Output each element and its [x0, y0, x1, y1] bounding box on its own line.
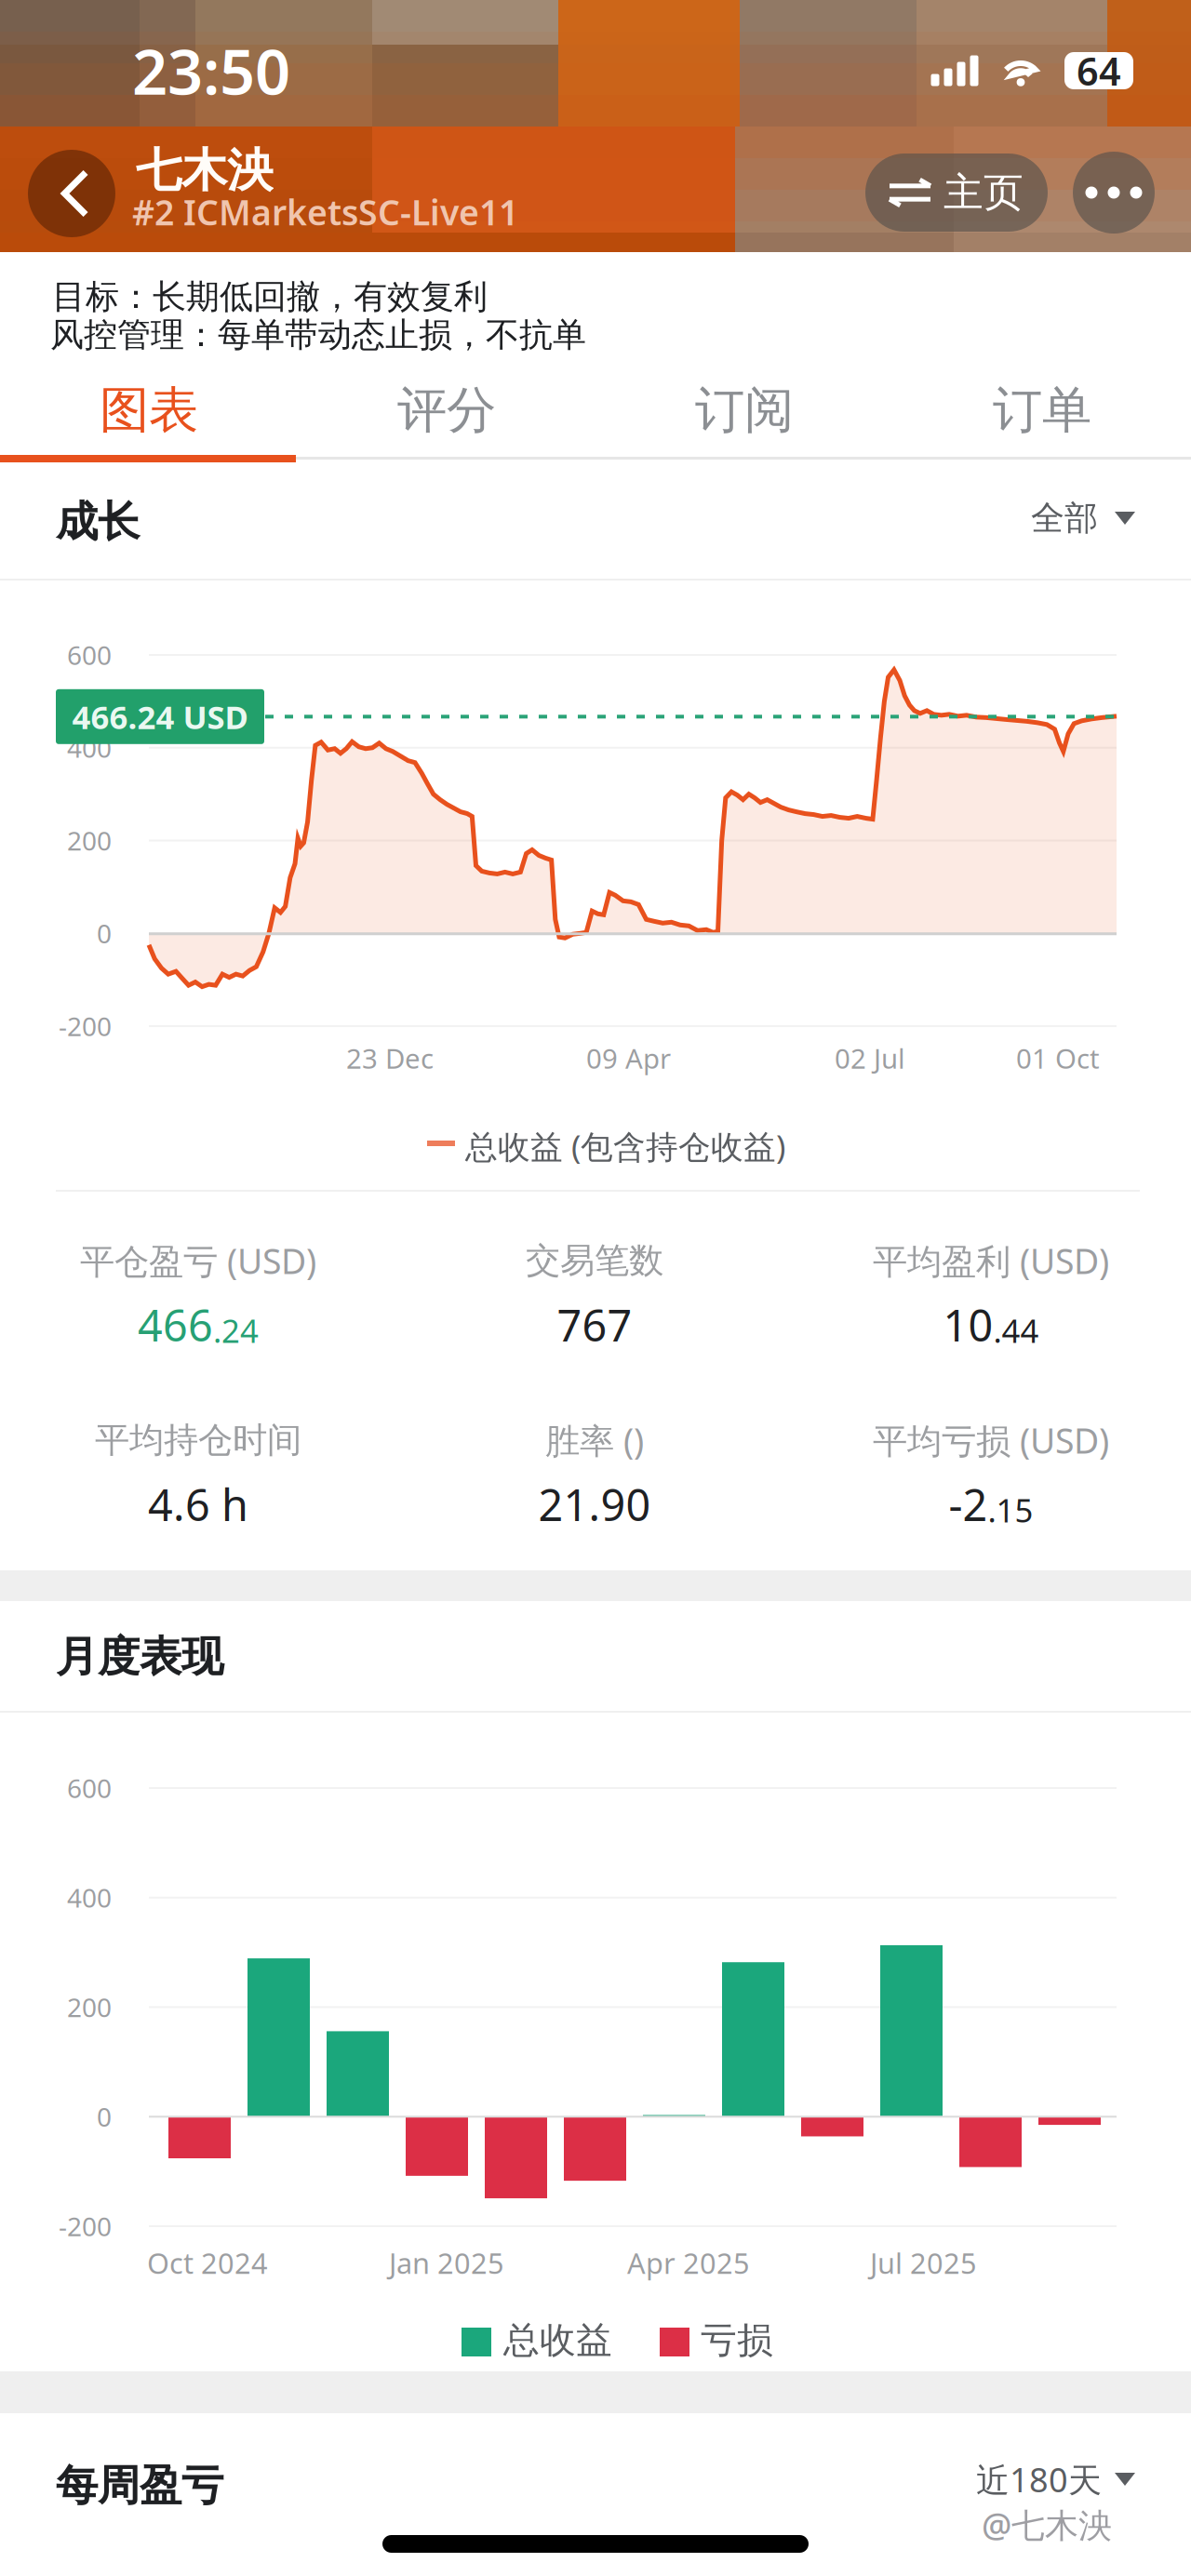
staticText: 21.90	[538, 1475, 651, 1533]
staticText: 总收益	[503, 2318, 612, 2362]
staticText: 400	[67, 730, 112, 765]
staticText: 200	[67, 823, 112, 858]
staticText: 订单	[993, 380, 1091, 441]
staticText: 64	[1077, 45, 1121, 96]
button[interactable]: 全部	[949, 495, 1135, 541]
staticText: Oct 2024	[147, 2244, 268, 2282]
staticText: -200	[59, 1009, 112, 1043]
staticText: 10	[943, 1296, 993, 1354]
staticText: -2	[949, 1475, 988, 1533]
staticText: 风控管理：每单带动态止损，不抗单	[50, 314, 586, 356]
staticText: 订阅	[695, 380, 794, 441]
button[interactable]: 评分	[298, 364, 595, 457]
staticText: 月度表现	[56, 1631, 223, 1683]
staticText: 01 Oct	[1016, 1040, 1100, 1076]
staticText: 亏损	[701, 2318, 773, 2362]
staticText: 平仓盈亏 (USD)	[80, 1237, 316, 1284]
staticText: Jan 2025	[389, 2244, 504, 2282]
button[interactable]: 订阅	[595, 364, 893, 457]
staticText: .44	[993, 1309, 1039, 1352]
staticText: Apr 2025	[627, 2244, 750, 2282]
button[interactable]: More options	[1073, 152, 1155, 234]
staticText: 466.24 USD	[72, 695, 248, 738]
staticText: 0	[97, 2099, 112, 2134]
staticText: 总收益 (包含持仓收益)	[465, 1125, 785, 1168]
staticText: 平均持仓时间	[95, 1419, 301, 1462]
staticText: -200	[59, 2209, 112, 2244]
staticText: 600	[67, 1771, 112, 1805]
staticText: 600	[67, 638, 112, 672]
staticText: 图表	[100, 380, 198, 441]
staticText: 400	[67, 1880, 112, 1915]
staticText: 每周盈亏	[56, 2460, 223, 2512]
staticText: 交易笔数	[526, 1239, 663, 1282]
staticText: #2 ICMarketsSC-Live11	[132, 189, 518, 235]
staticText: 23 Dec	[346, 1040, 434, 1076]
staticText: 全部	[1031, 498, 1098, 539]
staticText: .24	[213, 1309, 259, 1352]
staticText: 02 Jul	[835, 1040, 905, 1076]
staticText: 4.6 h	[148, 1475, 248, 1533]
staticText: 胜率 ()	[545, 1417, 644, 1463]
staticText: 近180天	[976, 2457, 1102, 2501]
staticText: .15	[988, 1488, 1033, 1531]
staticText: 200	[67, 1990, 112, 2024]
staticText: 23:50	[132, 29, 290, 112]
staticText: 0	[97, 916, 112, 951]
staticText: 目标：长期低回撤，有效复利	[52, 276, 488, 317]
staticText: 评分	[397, 380, 496, 441]
staticText: 主页	[943, 168, 1024, 217]
button[interactable]: 订单	[893, 364, 1191, 457]
staticText: 09 Apr	[586, 1040, 671, 1076]
staticText: 成长	[56, 496, 140, 548]
staticText: @七木泱	[982, 2503, 1112, 2547]
staticText: 466	[138, 1296, 213, 1354]
staticText: 平均亏损 (USD)	[873, 1417, 1109, 1463]
button[interactable]: 主页	[865, 153, 1048, 232]
staticText: 平均盈利 (USD)	[873, 1237, 1109, 1284]
button[interactable]: 图表	[0, 364, 298, 457]
button[interactable]: 近180天	[949, 2456, 1135, 2503]
staticText: Jul 2025	[870, 2244, 977, 2282]
staticText: 767	[557, 1296, 632, 1354]
staticText: 七木泱	[136, 142, 273, 199]
button[interactable]: Back	[28, 150, 115, 237]
